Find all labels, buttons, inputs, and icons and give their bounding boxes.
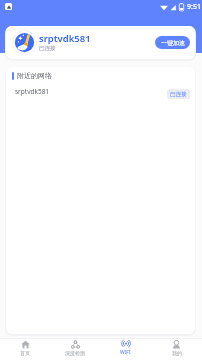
button[interactable]: 一键加速: [155, 36, 190, 49]
button[interactable]: srptvdk581: [6, 82, 195, 100]
staticText: 已连接: [39, 45, 56, 52]
button[interactable]: 我的: [151, 338, 202, 357]
staticText: srptvdk581: [39, 32, 91, 45]
staticText: 一键加速: [161, 39, 185, 47]
staticText: 9:51: [187, 2, 201, 12]
staticText: srptvdk581: [15, 87, 50, 96]
staticText: 深度检测: [65, 350, 85, 356]
staticText: 已连接: [170, 91, 187, 98]
button[interactable]: WIFI: [100, 338, 151, 357]
button[interactable]: 深度检测: [50, 338, 100, 357]
staticText: 附近的网络: [17, 71, 52, 80]
staticText: 我的: [172, 350, 182, 356]
staticText: 首页: [20, 350, 30, 356]
button[interactable]: 首页: [0, 338, 50, 357]
staticText: WIFI: [120, 349, 131, 356]
